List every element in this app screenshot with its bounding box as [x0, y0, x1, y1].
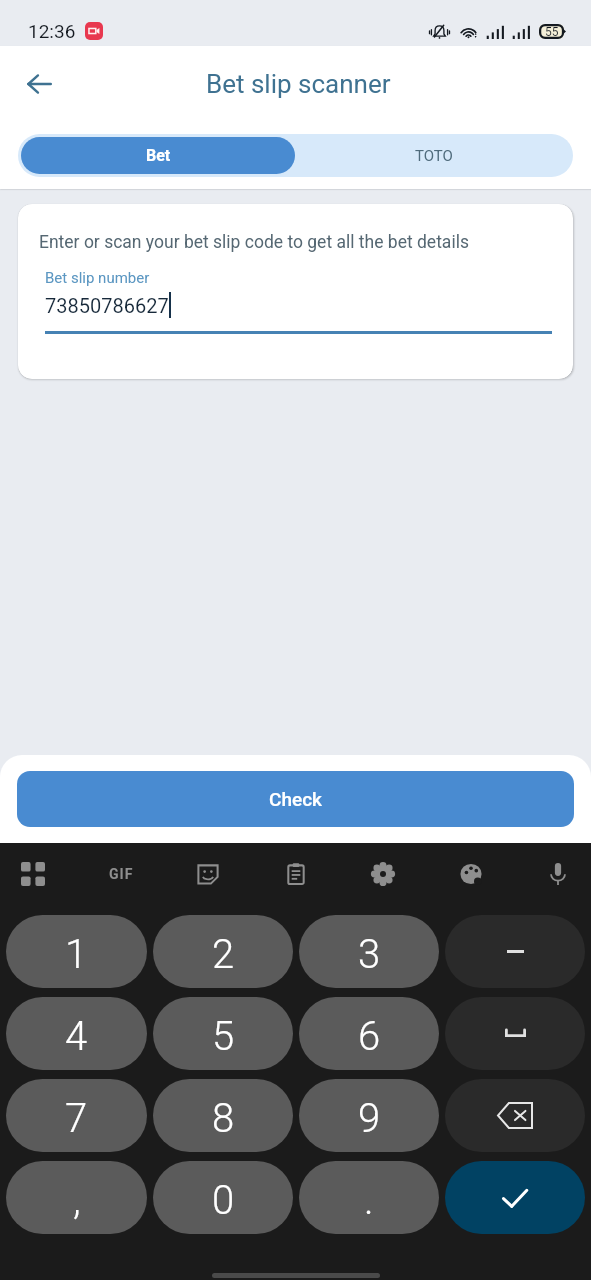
button[interactable]: 5: [153, 997, 293, 1070]
button[interactable]: 4: [6, 997, 147, 1070]
button[interactable]: clipboard: [279, 857, 313, 891]
button[interactable]: 8: [153, 1079, 293, 1152]
staticText: 6: [358, 1013, 381, 1060]
staticText: Check: [269, 788, 322, 810]
button[interactable]: Bet: [21, 137, 295, 174]
button[interactable]: ,: [6, 1161, 147, 1234]
button[interactable]: grid: [16, 857, 50, 891]
staticText: Bet: [146, 146, 171, 165]
button[interactable]: gif: [104, 857, 138, 891]
button[interactable]: palette: [454, 857, 488, 891]
button[interactable]: mic: [541, 857, 575, 891]
staticText: .: [364, 1177, 374, 1224]
button[interactable]: minus: [445, 915, 585, 988]
button[interactable]: settings: [366, 857, 400, 891]
staticText: 5: [212, 1013, 235, 1060]
staticText: 73850786627: [45, 294, 169, 317]
button[interactable]: 2: [153, 915, 293, 988]
button[interactable]: TOTO: [295, 134, 573, 177]
staticText: 55: [545, 25, 559, 39]
staticText: 1: [65, 931, 88, 978]
button[interactable]: sticker: [191, 857, 225, 891]
staticText: 7: [65, 1095, 88, 1142]
button[interactable]: 0: [153, 1161, 293, 1234]
staticText: 3: [358, 931, 381, 978]
button[interactable]: Back: [15, 60, 63, 108]
staticText: Bet slip scanner: [206, 69, 391, 99]
button[interactable]: 7: [6, 1079, 147, 1152]
staticText: 8: [212, 1095, 235, 1142]
button[interactable]: .: [299, 1161, 439, 1234]
button[interactable]: backspace: [445, 1079, 585, 1152]
button[interactable]: enter: [445, 1161, 585, 1234]
staticText: Bet slip number: [45, 269, 150, 287]
staticText: 4: [65, 1013, 88, 1060]
staticText: 2: [212, 931, 235, 978]
staticText: 9: [358, 1095, 381, 1142]
button[interactable]: 1: [6, 915, 147, 988]
button[interactable]: Check: [17, 771, 574, 827]
staticText: GIF: [109, 866, 134, 882]
button[interactable]: 9: [299, 1079, 439, 1152]
button[interactable]: space: [445, 997, 585, 1070]
staticText: ,: [73, 1177, 81, 1224]
staticText: 0: [212, 1177, 235, 1224]
staticText: 12:36: [28, 20, 76, 42]
staticText: TOTO: [415, 147, 453, 165]
button[interactable]: 6: [299, 997, 439, 1070]
staticText: Enter or scan your bet slip code to get …: [39, 232, 469, 253]
button[interactable]: 3: [299, 915, 439, 988]
